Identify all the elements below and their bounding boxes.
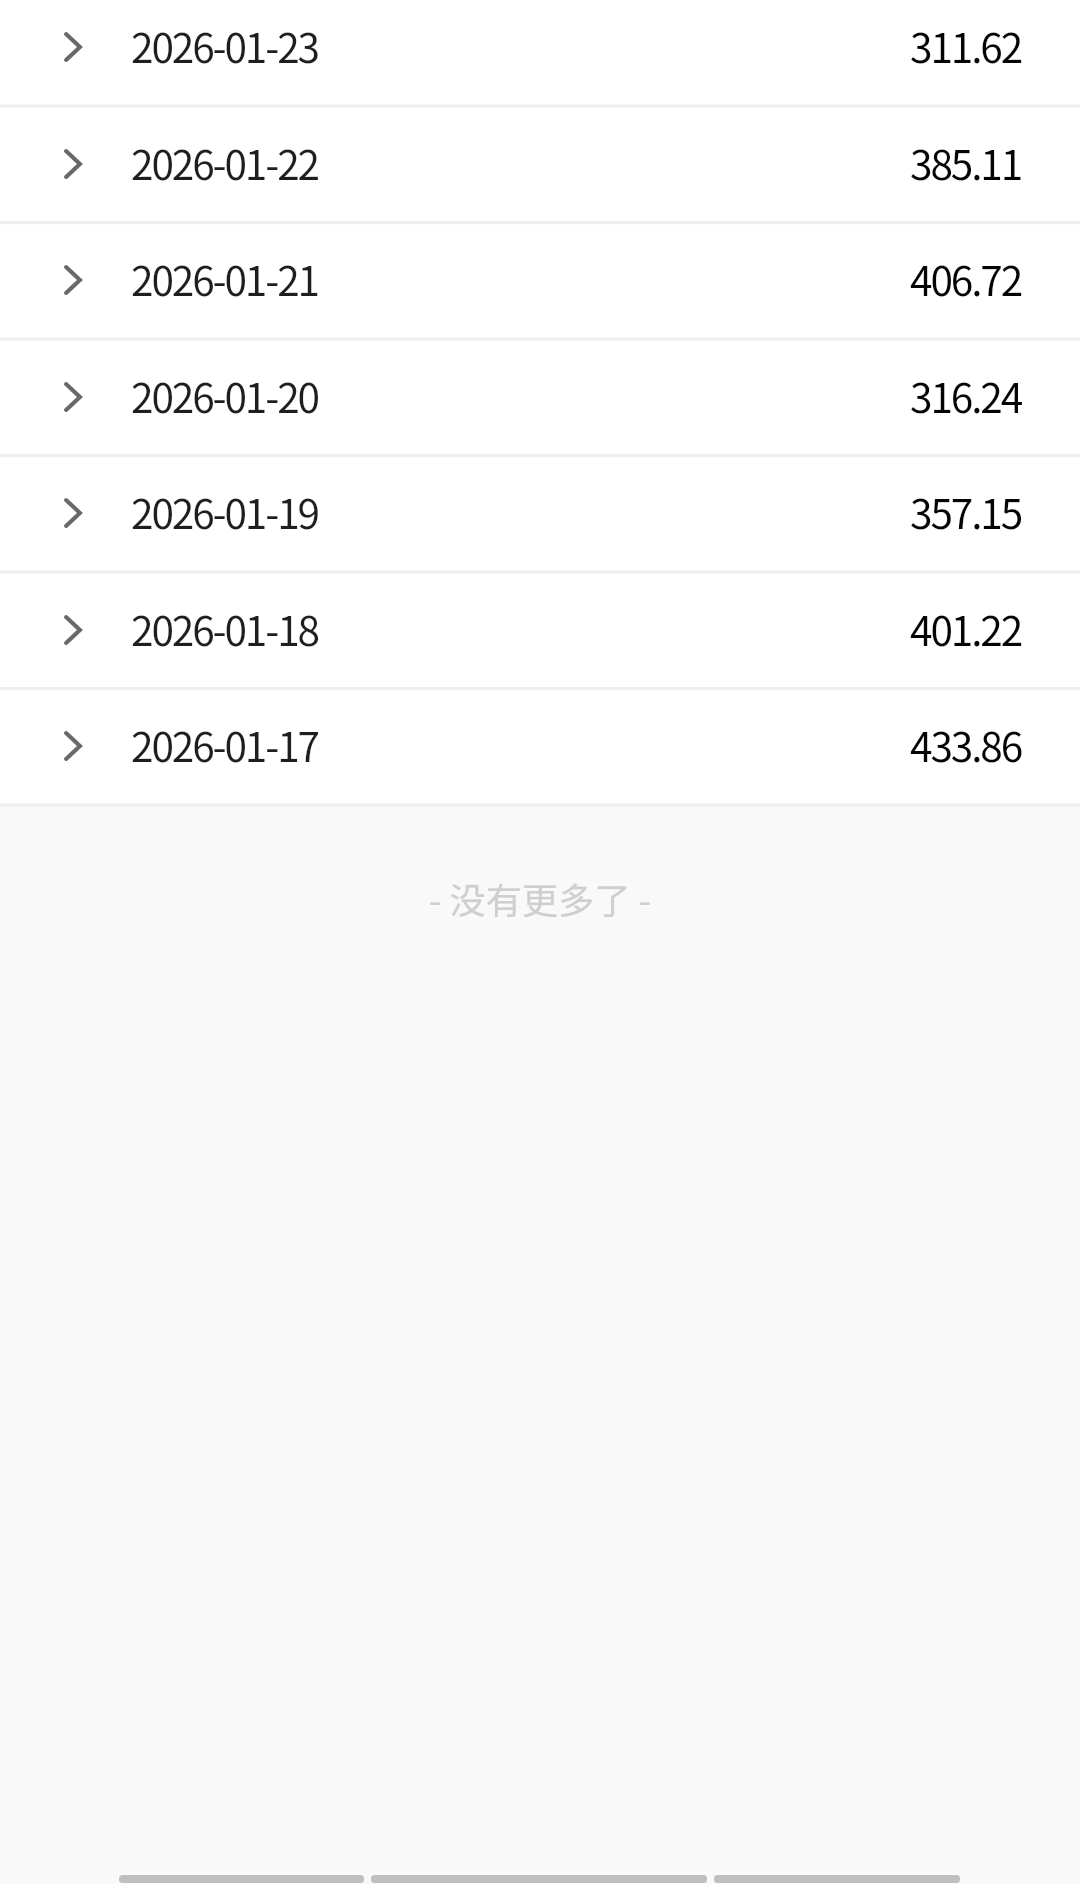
staticText: 401.22 — [910, 599, 1022, 658]
staticText: 406.72 — [910, 249, 1022, 308]
staticText: 2026-01-19 — [131, 482, 318, 541]
staticText: 2026-01-17 — [131, 715, 318, 774]
staticText: 357.15 — [910, 482, 1022, 541]
staticText: 2026-01-18 — [131, 599, 318, 658]
staticText: 311.62 — [910, 16, 1022, 75]
button[interactable]: 2026-01-19, 357.15 — [0, 457, 1080, 570]
staticText: 2026-01-22 — [131, 133, 318, 192]
button[interactable]: 2026-01-23, 311.62 — [0, 0, 1080, 104]
staticText: - 没有更多了 - — [0, 872, 1080, 924]
staticText: 2026-01-21 — [131, 249, 318, 308]
staticText: 2026-01-20 — [131, 366, 318, 425]
button[interactable]: 2026-01-18, 401.22 — [0, 574, 1080, 687]
staticText: 433.86 — [910, 715, 1022, 774]
staticText: 2026-01-23 — [131, 16, 318, 75]
button[interactable]: 2026-01-20, 316.24 — [0, 341, 1080, 454]
staticText: 385.11 — [910, 133, 1022, 192]
button[interactable]: 2026-01-21, 406.72 — [0, 224, 1080, 337]
staticText: 316.24 — [910, 366, 1022, 425]
button[interactable]: 2026-01-22, 385.11 — [0, 108, 1080, 221]
button[interactable]: 2026-01-17, 433.86 — [0, 690, 1080, 803]
